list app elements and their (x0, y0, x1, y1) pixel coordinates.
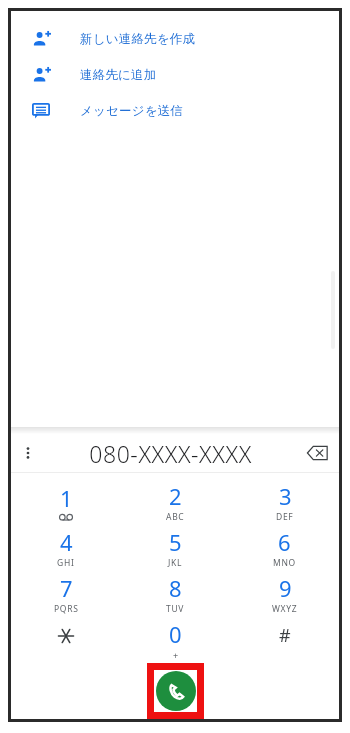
button[interactable]: 3 (230, 479, 339, 525)
button[interactable]: Call (156, 671, 196, 711)
staticText: TUV (166, 603, 185, 615)
staticText: DEF (276, 511, 294, 523)
button[interactable]: 4 (11, 525, 121, 571)
button[interactable] (11, 617, 121, 663)
staticText: ABC (166, 511, 185, 523)
button[interactable]: 1 (11, 479, 121, 525)
staticText: # (279, 623, 291, 648)
staticText: 9 (279, 573, 292, 603)
staticText: 2 (169, 481, 182, 511)
staticText: 1 (60, 483, 73, 513)
button[interactable]: 連絡先に追加 (11, 57, 339, 93)
staticText: 080-XXXX-XXXX (89, 438, 252, 469)
staticText: 新しい連絡先を作成 (80, 31, 196, 47)
staticText: 8 (169, 573, 182, 603)
staticText: 4 (60, 527, 73, 557)
staticText: 0 (169, 619, 182, 649)
button[interactable]: 5 (121, 525, 230, 571)
button[interactable]: # (230, 617, 339, 663)
staticText: GHI (57, 557, 75, 569)
button[interactable]: メッセージを送信 (11, 93, 339, 129)
button[interactable]: 8 (121, 571, 230, 617)
button[interactable]: 6 (230, 525, 339, 571)
button[interactable]: More options (11, 436, 45, 470)
staticText: 連絡先に追加 (80, 67, 157, 83)
staticText: 7 (60, 573, 73, 603)
staticText: 3 (279, 481, 292, 511)
staticText: PQRS (54, 603, 79, 615)
button[interactable]: 新しい連絡先を作成 (11, 21, 339, 57)
staticText: + (173, 649, 179, 661)
button[interactable]: Backspace (295, 434, 339, 472)
staticText: MNO (273, 557, 296, 569)
staticText: WXYZ (272, 603, 298, 615)
staticText: JKL (168, 557, 183, 569)
button[interactable]: 2 (121, 479, 230, 525)
button[interactable]: 7 (11, 571, 121, 617)
button[interactable]: 0 (121, 617, 230, 663)
staticText: 6 (278, 527, 291, 557)
staticText: メッセージを送信 (80, 103, 184, 119)
button[interactable]: 9 (230, 571, 339, 617)
staticText: 5 (169, 527, 182, 557)
